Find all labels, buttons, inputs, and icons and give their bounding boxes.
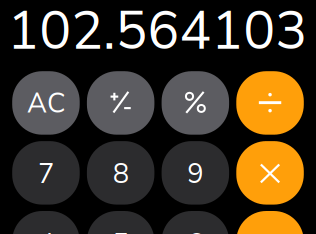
staticText: 5 [113, 225, 129, 234]
button[interactable]: Subtract [236, 211, 304, 234]
staticText: 8 [113, 155, 129, 193]
staticText: 6 [187, 225, 203, 234]
button[interactable]: Percent [162, 71, 229, 135]
button[interactable]: 4 [12, 211, 80, 234]
staticText: 102.564103 [7, 0, 307, 67]
button[interactable]: AC [12, 71, 80, 135]
button[interactable]: 6 [162, 211, 229, 234]
button[interactable]: 5 [87, 211, 154, 234]
staticText: 7 [38, 155, 54, 193]
button[interactable]: Plus or minus [87, 71, 154, 135]
button[interactable]: 7 [12, 141, 80, 205]
staticText: AC [27, 85, 65, 122]
button[interactable]: Divide [236, 71, 304, 135]
button[interactable]: 9 [162, 141, 229, 205]
staticText: 4 [38, 225, 54, 234]
button[interactable]: Multiply [236, 141, 304, 205]
staticText: 9 [187, 155, 203, 193]
button[interactable]: 8 [87, 141, 154, 205]
